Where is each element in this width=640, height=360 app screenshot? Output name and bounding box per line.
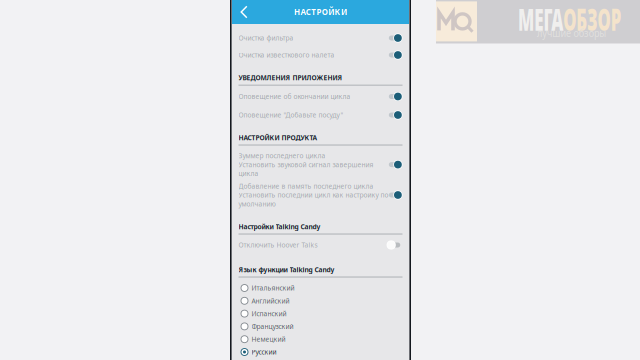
button[interactable]: Очистка известкового налета <box>238 50 402 60</box>
staticText: цикла <box>238 169 258 178</box>
button[interactable]: Немецкий <box>238 334 402 345</box>
staticText: умолчанию <box>238 199 275 208</box>
staticText: Язык функции Talking Candy <box>238 265 334 274</box>
staticText: Настройки Talking Candy <box>238 222 320 231</box>
button[interactable]: Добавление в память последнего цикла <box>238 182 402 208</box>
staticText: ОБЗОР <box>601 0 640 39</box>
staticText: НАСТРОЙКИ ПРОДУКТА <box>238 133 317 142</box>
button[interactable]: Оповещение об окончании цикла <box>238 92 402 101</box>
button[interactable]: Оповещение "Добавьте посуду" <box>238 110 402 120</box>
staticText: Испанский <box>251 309 286 318</box>
staticText: Добавление в память последнего цикла <box>238 182 373 191</box>
staticText: Отключить Hoover Talks <box>238 241 317 249</box>
staticText: Английский <box>251 296 289 305</box>
button[interactable]: Итальянский <box>238 282 402 293</box>
staticText: Немецкий <box>251 335 285 344</box>
button[interactable]: Французский <box>238 321 402 332</box>
staticText: Оповещение об окончании цикла <box>238 92 350 101</box>
button[interactable]: Back <box>232 0 256 24</box>
staticText: Русский <box>251 348 276 356</box>
staticText: Очистка фильтра <box>238 34 293 42</box>
staticText: Оповещение "Добавьте посуду" <box>238 111 343 119</box>
staticText: НАСТРОЙКИ <box>294 7 347 17</box>
button[interactable]: Зуммер последнего цикла <box>238 151 402 178</box>
staticText: Установить последний цикл как настройку … <box>238 191 388 199</box>
staticText: Итальянский <box>251 284 294 292</box>
staticText: Очистка известкового налета <box>238 51 334 59</box>
button[interactable]: Очистка фильтра <box>238 33 402 43</box>
staticText: Французский <box>251 322 293 331</box>
staticText: Установить звуковой сигнал завершения <box>238 160 373 169</box>
button[interactable]: Испанский <box>238 308 402 319</box>
staticText: лучшие обзоры <box>537 26 628 42</box>
button[interactable]: Английский <box>238 295 402 306</box>
staticText: Зуммер последнего цикла <box>238 151 325 160</box>
staticText: УВЕДОМЛЕНИЯ ПРИЛОЖЕНИЯ <box>238 73 342 82</box>
button[interactable]: Русский <box>238 346 402 357</box>
button[interactable]: Отключить Hoover Talks <box>238 240 402 250</box>
staticText: МЕГА <box>518 0 601 39</box>
